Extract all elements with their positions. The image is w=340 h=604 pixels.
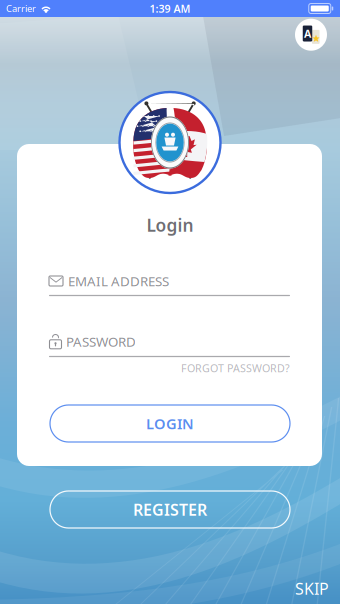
button[interactable]: LOGIN	[50, 405, 290, 442]
staticText: FORGOT PASSWORD?	[181, 361, 290, 375]
button[interactable]: FORGOT PASSWORD?	[49, 361, 290, 375]
staticText: 1:39 AM	[149, 1, 190, 16]
button[interactable]: REGISTER	[50, 491, 290, 528]
staticText: EMAIL ADDRESS	[68, 272, 169, 290]
staticText: A	[304, 26, 311, 41]
staticText: LOGIN	[146, 414, 194, 433]
staticText: Carrier	[6, 2, 36, 15]
staticText: REGISTER	[133, 499, 207, 520]
staticText: PASSWORD	[66, 333, 136, 350]
button[interactable]: SKIP	[289, 577, 335, 599]
staticText: Login	[146, 213, 193, 236]
staticText: SKIP	[295, 578, 329, 599]
button[interactable]: Translate	[295, 19, 327, 51]
